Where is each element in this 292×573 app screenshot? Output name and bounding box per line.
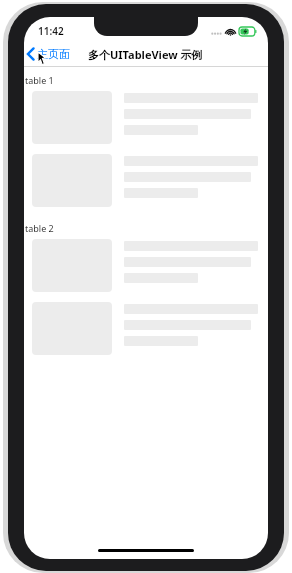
button[interactable] [24,88,268,147]
staticText: 多个UITableView 示例 [88,47,203,62]
staticText: 11:42 [38,24,64,38]
button[interactable] [24,299,268,358]
button[interactable]: 主页面 [24,45,76,63]
staticText: 主页面 [37,47,70,61]
staticText: table 2 [25,222,54,234]
staticText: table 1 [25,74,54,86]
button[interactable] [24,236,268,295]
button[interactable] [24,151,268,210]
